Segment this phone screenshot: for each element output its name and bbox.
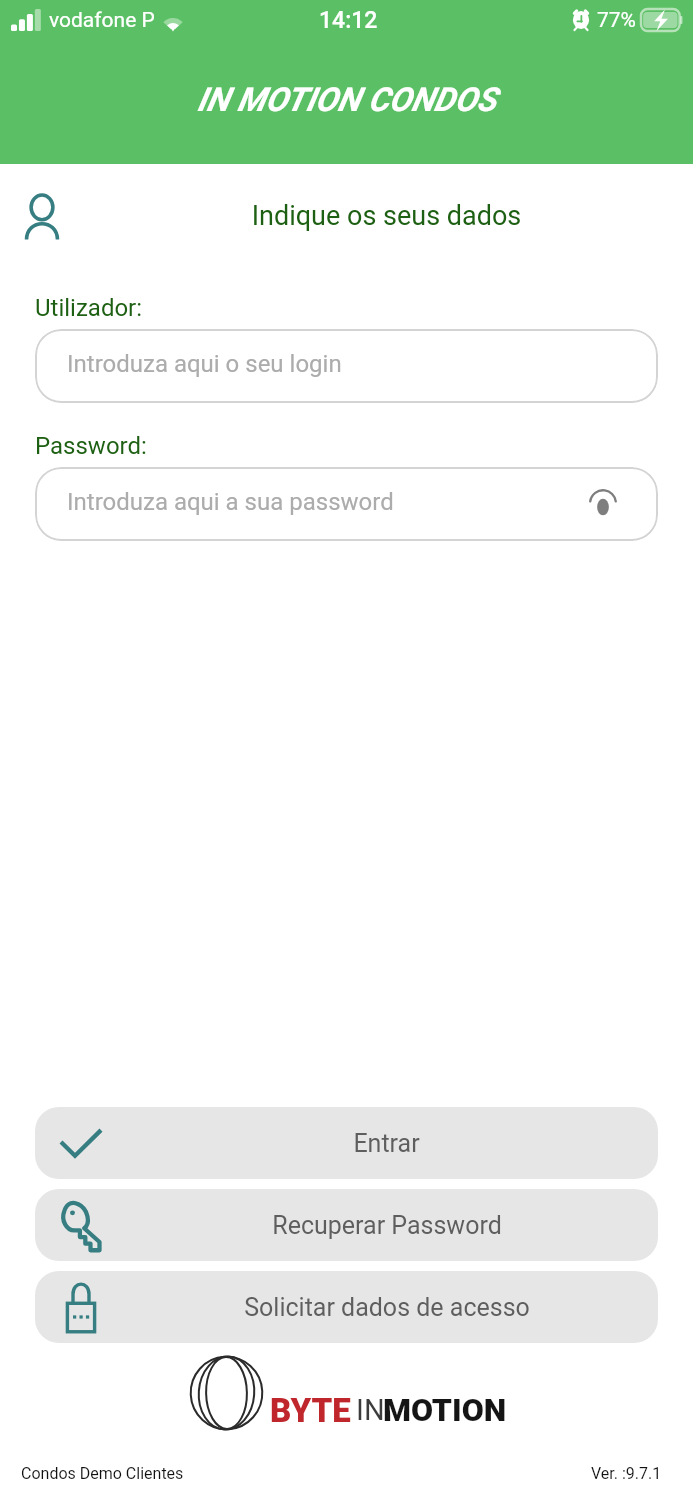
staticText: 14:12 <box>319 7 378 34</box>
staticText: Condos Demo Clientes <box>21 1464 184 1483</box>
staticText: Utilizador: <box>35 294 143 322</box>
button[interactable]: Solicitar dados de acesso <box>35 1271 658 1343</box>
button[interactable]: Introduza aqui o seu login <box>35 329 658 403</box>
staticText: IN <box>356 1393 385 1427</box>
button[interactable]: Introduza aqui a sua password <box>35 467 658 541</box>
staticText: Recuperar Password <box>272 1211 502 1240</box>
staticText: BYTE <box>270 1391 351 1430</box>
button[interactable]: Entrar <box>35 1107 658 1179</box>
staticText: Ver. :9.7.1 <box>591 1464 662 1483</box>
staticText: Password: <box>35 432 147 460</box>
other: User <box>25 194 59 240</box>
staticText: MOTION <box>383 1391 507 1429</box>
staticText: Introduza aqui a sua password <box>67 488 394 516</box>
other: Show password <box>589 493 617 516</box>
staticText: Indique os seus dados <box>80 200 693 232</box>
staticText: IN MOTION CONDOS <box>197 80 497 119</box>
staticText: Introduza aqui o seu login <box>67 350 342 378</box>
staticText: 77% <box>597 8 636 33</box>
button[interactable]: Recuperar Password <box>35 1189 658 1261</box>
staticText: Entrar <box>353 1129 420 1158</box>
staticText: vodafone P <box>49 8 155 33</box>
staticText: Solicitar dados de acesso <box>244 1293 530 1322</box>
